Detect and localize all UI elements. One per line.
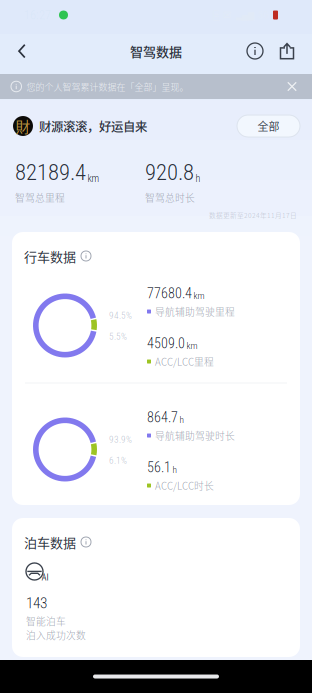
staticText: 77680.4 (147, 285, 192, 302)
staticText: 財 (15, 115, 30, 137)
staticText: 4509.0 (147, 335, 185, 352)
staticText: 864.7 (147, 409, 178, 426)
staticText: 财源滚滚，好运自来 (39, 117, 147, 135)
staticText: 泊入成功次数 (26, 628, 86, 642)
staticText: 94.5% (109, 310, 132, 321)
staticText: h (172, 464, 176, 475)
staticText: 您的个人智驾累计数据在「全部」呈现。 (26, 80, 188, 93)
staticText: 智驾总里程 (15, 191, 65, 205)
staticText: km (186, 340, 197, 351)
staticText: 智驾数据 (130, 41, 182, 60)
button[interactable]: About 行车数据 (81, 251, 91, 261)
staticText: h (195, 173, 200, 184)
staticText: km (87, 173, 99, 184)
button[interactable]: Information (240, 30, 270, 72)
staticText: ACC/LCC里程 (155, 354, 214, 369)
staticText: 智驾总时长 (145, 191, 195, 205)
staticText: 93.9% (109, 434, 132, 445)
staticText: km (193, 290, 204, 301)
staticText: 行车数据 (24, 246, 76, 265)
staticText: 智能泊车 (26, 614, 66, 628)
staticText: 导航辅助驾驶时长 (155, 428, 235, 443)
button[interactable]: About 泊车数据 (81, 537, 91, 547)
button[interactable]: 全部 (237, 115, 300, 137)
staticText: 143 (26, 594, 47, 612)
staticText: 数据更新至2024年11月17日 (209, 210, 297, 220)
staticText: ACC/LCC时长 (155, 478, 214, 493)
staticText: 泊车数据 (24, 532, 76, 551)
staticText: 全部 (257, 118, 279, 134)
staticText: h (179, 414, 183, 425)
staticText: 导航辅助驾驶里程 (155, 304, 235, 319)
staticText: 920.8 (145, 159, 194, 186)
staticText: 6.1% (109, 455, 127, 466)
button[interactable]: Back (0, 30, 44, 72)
button[interactable]: Share (270, 30, 304, 72)
staticText: 56.1 (147, 459, 171, 476)
staticText: 5.5% (109, 331, 127, 342)
staticText: 82189.4 (15, 159, 86, 186)
button[interactable]: Dismiss notice (281, 75, 303, 97)
staticText: AI (41, 572, 48, 583)
